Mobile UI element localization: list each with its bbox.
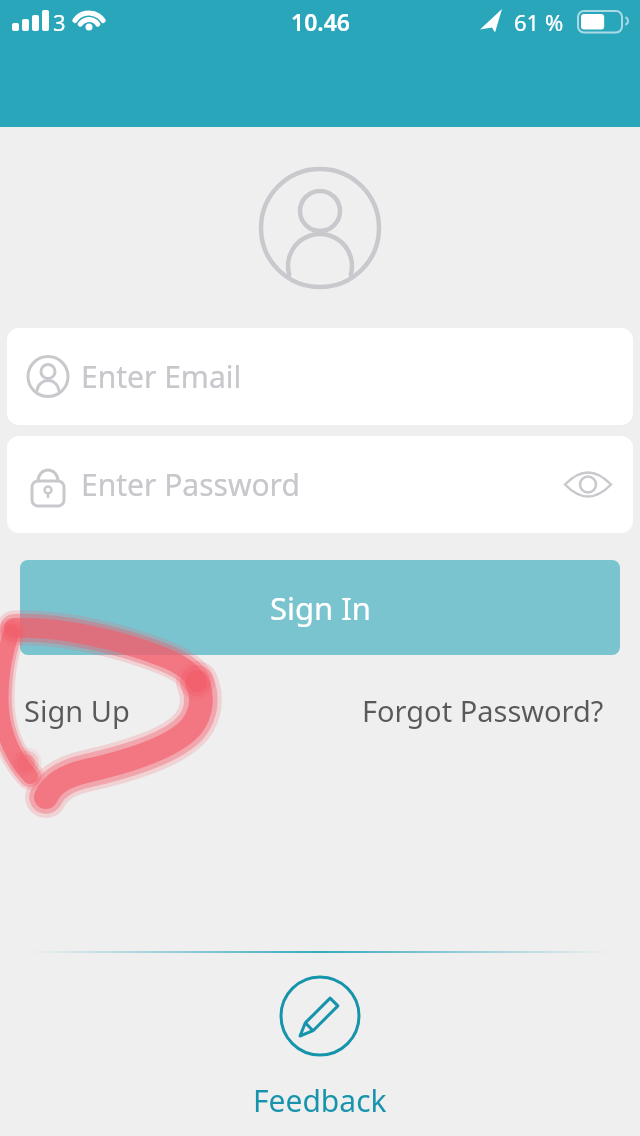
staticText: Enter Password [81, 464, 300, 505]
staticText: 10.46 [291, 6, 350, 37]
button[interactable]: Sign In [20, 560, 620, 655]
button[interactable]: Forgot Password? [362, 691, 604, 730]
button[interactable]: Sign Up [24, 691, 130, 730]
staticText: Forgot Password? [362, 691, 604, 730]
staticText: Sign In [270, 587, 371, 629]
button[interactable]: Enter Email [7, 328, 633, 425]
button[interactable]: Feedback [253, 975, 387, 1121]
staticText: Enter Email [81, 356, 242, 397]
button[interactable]: Enter Password [7, 436, 633, 533]
staticText: 61 % [514, 7, 564, 37]
staticText: Feedback [253, 1080, 387, 1121]
staticText: Sign Up [24, 691, 130, 730]
staticText: 3 [53, 7, 66, 37]
